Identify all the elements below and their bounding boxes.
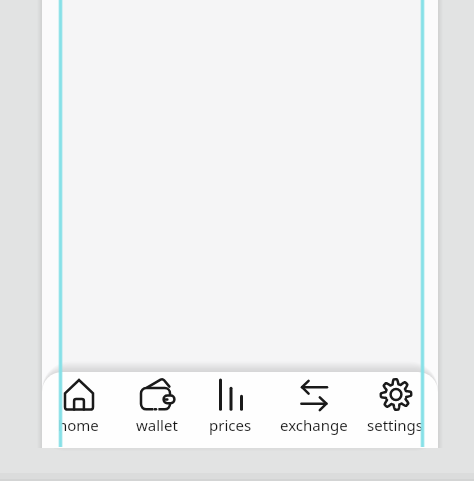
- button[interactable]: prices: [191, 372, 269, 448]
- staticText: prices: [209, 415, 252, 435]
- staticText: wallet: [136, 415, 178, 435]
- staticText: home: [58, 415, 99, 435]
- staticText: settings: [367, 415, 424, 435]
- button[interactable]: settings: [356, 372, 434, 448]
- button[interactable]: exchange: [275, 372, 353, 448]
- button[interactable]: wallet: [118, 372, 196, 448]
- staticText: exchange: [280, 415, 348, 435]
- button[interactable]: home: [39, 372, 117, 448]
